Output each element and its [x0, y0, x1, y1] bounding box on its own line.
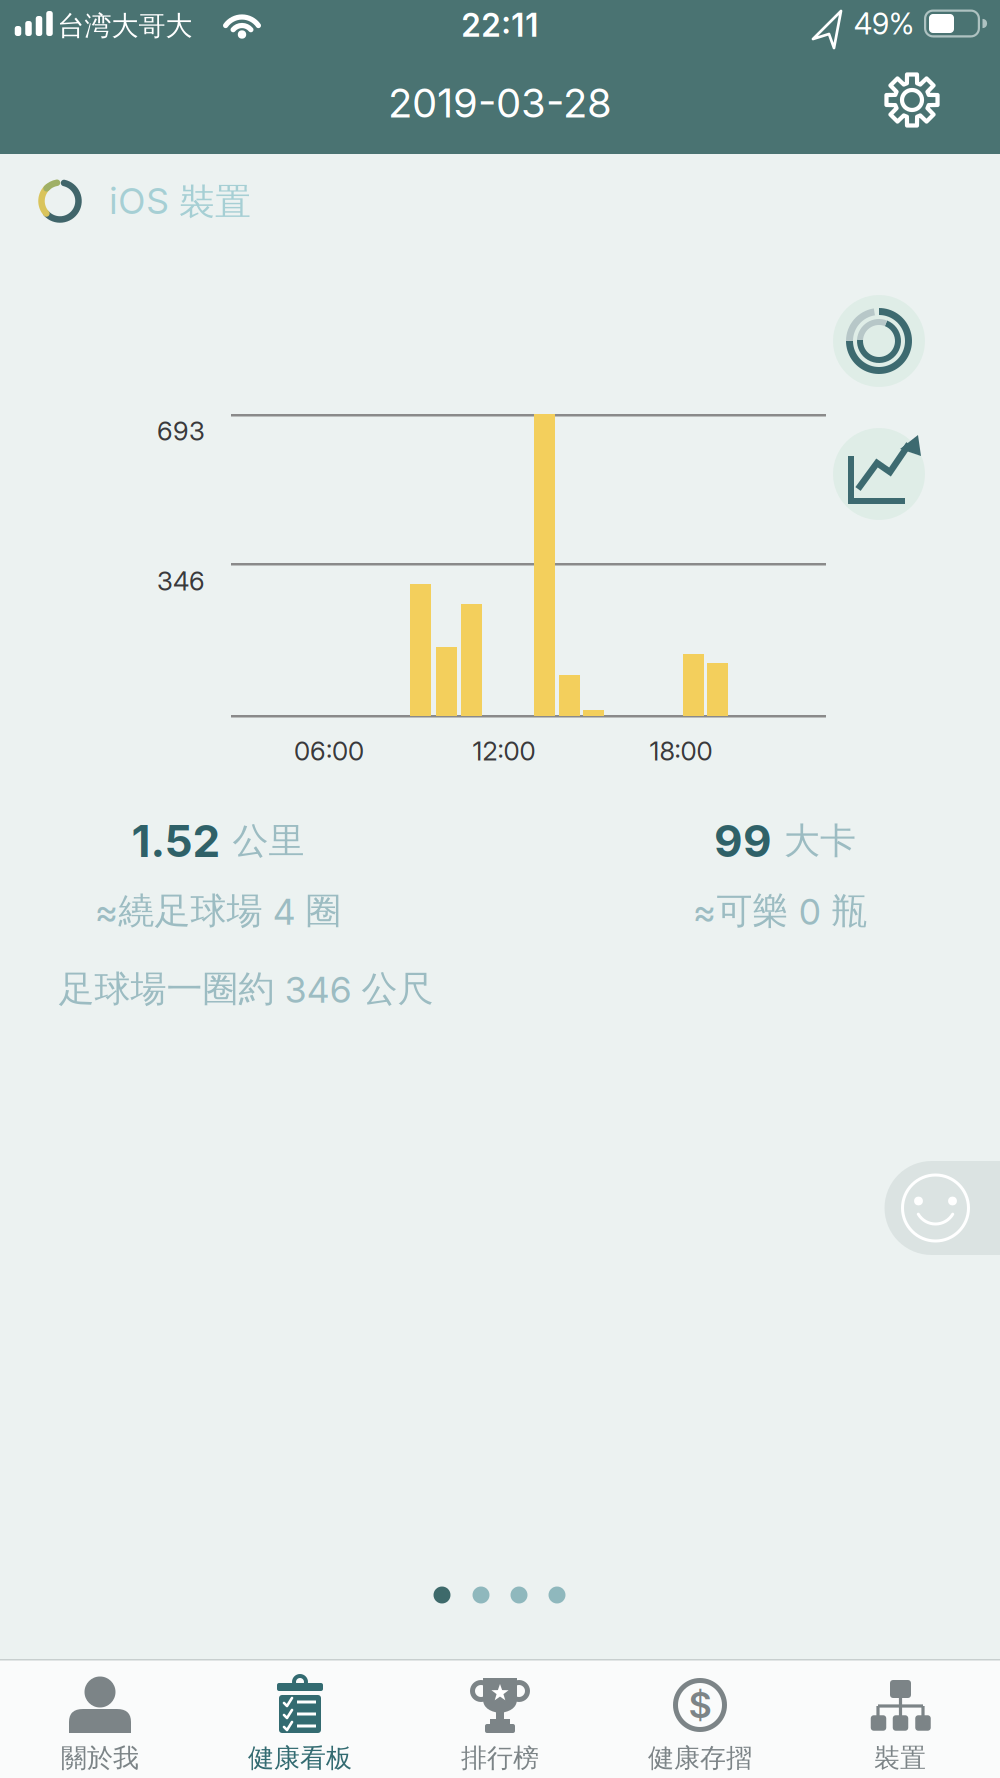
button[interactable]: iOS 裝置: [30, 170, 270, 232]
staticText: 49%: [854, 7, 914, 41]
staticText: 346: [157, 566, 205, 596]
staticText: 06:00: [294, 736, 364, 766]
button[interactable]: $: [600, 1660, 800, 1778]
button[interactable]: 裝置: [800, 1660, 1000, 1778]
staticText: ≈繞足球場 4 圈: [94, 889, 341, 933]
button[interactable]: Mood: [884, 1161, 999, 1255]
button[interactable]: 健康看板: [200, 1660, 400, 1778]
staticText: 公里: [232, 819, 304, 863]
staticText: 關於我: [61, 1742, 139, 1774]
staticText: 排行榜: [461, 1742, 539, 1774]
staticText: 大卡: [784, 819, 856, 863]
staticText: 台湾大哥大: [57, 9, 192, 43]
staticText: 健康存摺: [648, 1742, 752, 1774]
staticText: $: [688, 1684, 711, 1726]
staticText: 99: [714, 815, 772, 867]
staticText: 2019-03-28: [388, 79, 612, 127]
staticText: 12:00: [472, 736, 535, 766]
button[interactable]: Trends: [833, 428, 925, 520]
staticText: 健康看板: [248, 1742, 352, 1774]
button[interactable]: Settings: [882, 70, 942, 130]
staticText: 18:00: [649, 736, 712, 766]
staticText: 22:11: [461, 6, 539, 44]
staticText: ≈可樂 0 瓶: [692, 889, 867, 933]
staticText: 693: [157, 416, 205, 446]
staticText: 裝置: [874, 1742, 926, 1774]
staticText: 足球場一圈約 346 公尺: [58, 967, 433, 1011]
button[interactable]: 排行榜: [400, 1660, 600, 1778]
staticText: iOS 裝置: [109, 180, 251, 224]
button[interactable]: Activity rings: [833, 295, 925, 387]
staticText: 1.52: [131, 815, 220, 867]
button[interactable]: 關於我: [0, 1660, 200, 1778]
